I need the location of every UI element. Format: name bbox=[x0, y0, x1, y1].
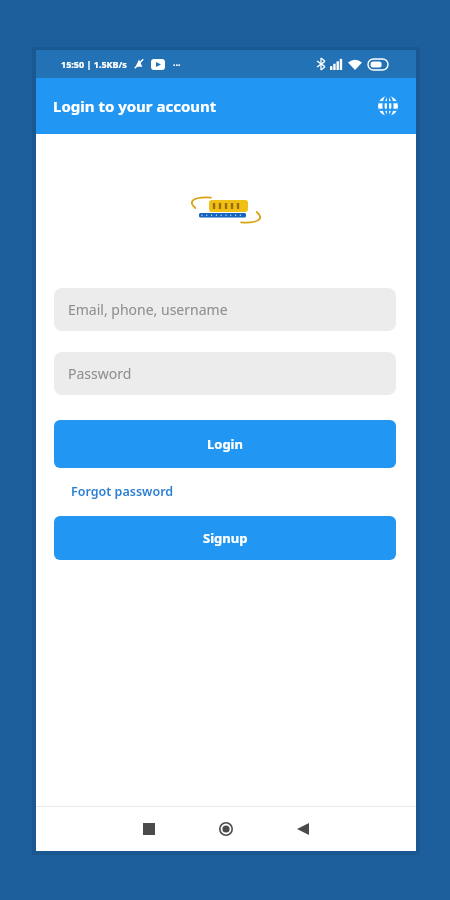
button[interactable] bbox=[129, 809, 169, 849]
staticText: Signup bbox=[203, 529, 248, 547]
button[interactable]: Email, phone, username bbox=[54, 288, 396, 331]
staticText: Login bbox=[207, 435, 243, 453]
button[interactable]: Password bbox=[54, 352, 396, 395]
button[interactable]: Forgot password bbox=[71, 483, 174, 500]
button[interactable] bbox=[283, 809, 323, 849]
button[interactable] bbox=[376, 94, 400, 118]
staticText: Password bbox=[68, 364, 132, 383]
button[interactable] bbox=[206, 809, 246, 849]
staticText: 15:50 | 1.5KB/s bbox=[61, 58, 127, 70]
staticText: Email, phone, username bbox=[68, 300, 228, 319]
button[interactable]: Login bbox=[54, 420, 396, 468]
staticText: ··· bbox=[173, 58, 181, 70]
staticText: Forgot password bbox=[71, 483, 174, 500]
button[interactable]: Signup bbox=[54, 516, 396, 560]
staticText: Login to your account bbox=[53, 96, 217, 116]
